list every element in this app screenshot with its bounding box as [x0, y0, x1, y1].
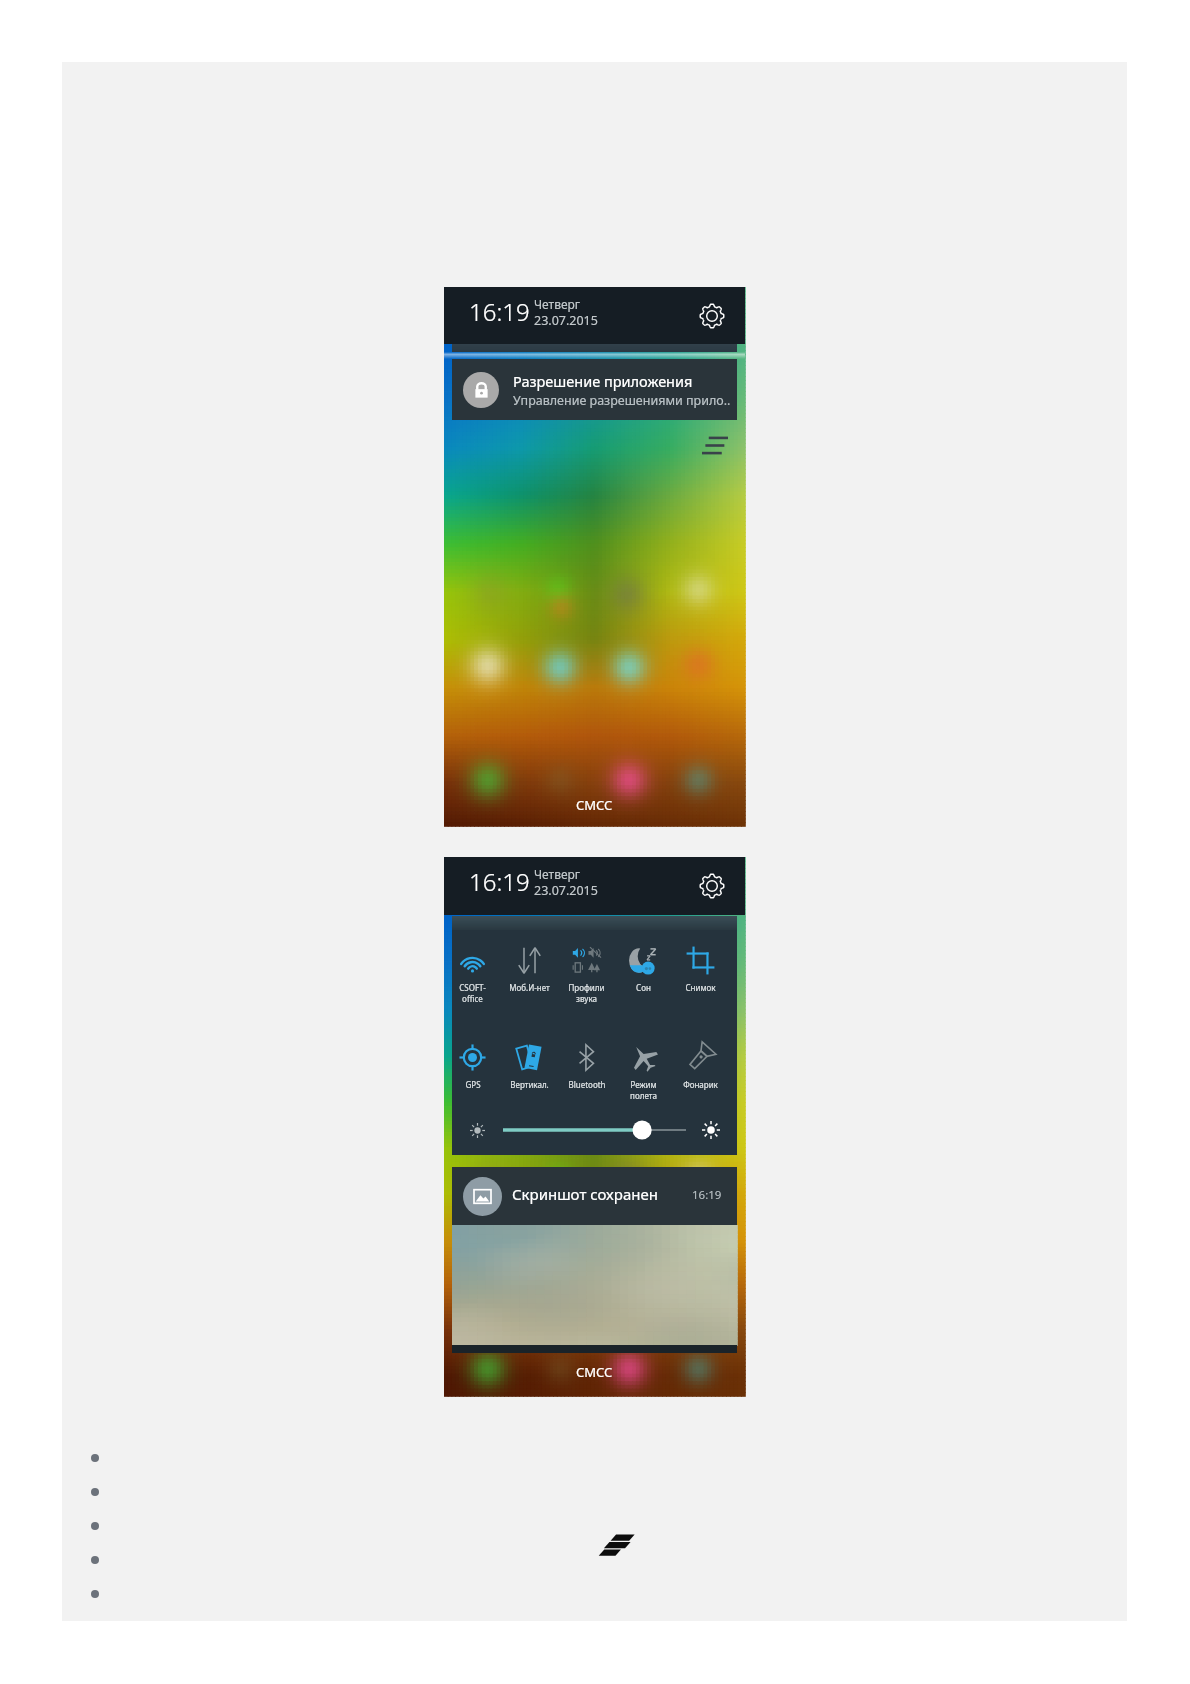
staticText: Моб.И-нет [509, 982, 550, 993]
button[interactable]: Скриншот сохранен [452, 1167, 737, 1225]
button[interactable]: Фонарик [672, 1042, 729, 1090]
staticText: Четверг [534, 296, 581, 312]
staticText: 23.07.2015 [534, 312, 598, 329]
staticText: 16:19 [469, 295, 530, 328]
button[interactable]: Разрешение приложения [452, 359, 737, 420]
button[interactable]: Clear all notifications [702, 436, 728, 455]
staticText: Четверг [534, 866, 581, 882]
button[interactable]: Bluetooth [558, 1042, 615, 1090]
staticText: Bluetooth [568, 1079, 606, 1090]
staticText: Фонарик [683, 1079, 718, 1090]
staticText: 16:19 [469, 865, 530, 898]
staticText: CSOFT- office [459, 982, 486, 1004]
staticText: Сон [636, 982, 651, 993]
button[interactable]: Профили звука [558, 945, 615, 1004]
staticText: GPS [465, 1079, 481, 1090]
button[interactable]: CSOFT- office [444, 945, 501, 1004]
staticText: Режим полета [630, 1079, 657, 1101]
staticText: Профили звука [568, 982, 605, 1004]
staticText: 23.07.2015 [534, 882, 598, 899]
staticText: CMCC [576, 1363, 613, 1381]
button[interactable]: GPS [444, 1042, 501, 1090]
staticText: Разрешение приложения [513, 371, 693, 391]
button[interactable]: Settings [696, 300, 728, 332]
staticText: CMCC [576, 796, 613, 814]
button[interactable]: Settings [696, 870, 728, 902]
staticText: Скриншот сохранен [512, 1184, 658, 1204]
button[interactable]: Сон [615, 945, 672, 993]
staticText: Снимок [685, 982, 716, 993]
staticText: Вертикал. [510, 1079, 549, 1090]
button[interactable]: Снимок [672, 945, 729, 993]
staticText: Управление разрешениями прило.. [513, 392, 731, 409]
button[interactable]: Режим полета [615, 1042, 672, 1101]
staticText: 16:19 [692, 1187, 722, 1203]
button[interactable]: Моб.И-нет [501, 945, 558, 993]
button[interactable]: Вертикал. [501, 1042, 558, 1090]
